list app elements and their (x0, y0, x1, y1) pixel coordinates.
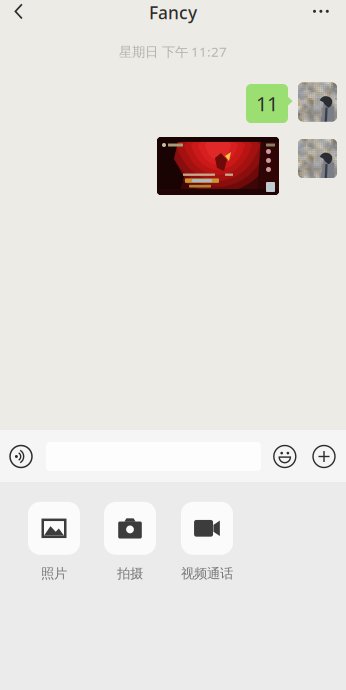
button[interactable]: Voice input (4, 439, 38, 473)
button[interactable]: 拍摄 (92, 503, 168, 580)
staticText: 星期日 下午 11:27 (119, 43, 227, 60)
button[interactable]: 照片 (16, 503, 92, 580)
staticText: 11 (256, 90, 278, 117)
button[interactable]: Emoji (269, 440, 301, 472)
staticText: Fancy (149, 1, 197, 24)
staticText: 视频通话 (181, 565, 233, 582)
staticText: 拍摄 (117, 565, 143, 582)
button[interactable]: More (302, 0, 340, 26)
button[interactable]: More options (308, 440, 340, 472)
button[interactable]: 视频通话 (169, 503, 245, 580)
button[interactable]: Back (0, 0, 39, 27)
staticText: 照片 (41, 565, 67, 582)
